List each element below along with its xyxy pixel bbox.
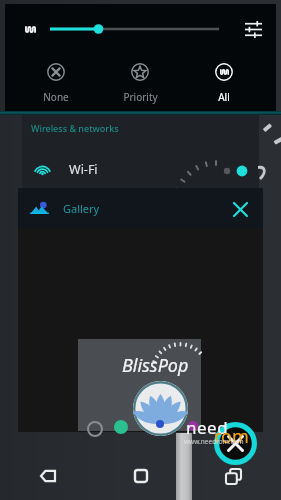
button[interactable]: Recent apps — [188, 452, 278, 500]
button[interactable]: Home — [96, 452, 186, 500]
button[interactable]: None — [20, 58, 92, 111]
button[interactable]: Close — [229, 198, 251, 220]
button[interactable]: Gallery — [18, 188, 263, 228]
button[interactable]: Wi-Fi — [22, 150, 259, 188]
staticText: Wireless & networks — [31, 122, 119, 134]
staticText: None — [43, 90, 69, 104]
button[interactable] — [216, 159, 252, 183]
staticText: www.needrom.com — [184, 437, 244, 446]
staticText: BlissPop — [122, 353, 189, 378]
staticText: All — [218, 90, 230, 104]
staticText: rom — [214, 424, 249, 449]
staticText: Wi-Fi — [69, 161, 98, 178]
button[interactable]: All — [188, 58, 260, 111]
button[interactable]: Sound settings — [241, 17, 265, 41]
staticText: need — [186, 416, 229, 439]
staticText: Gallery — [63, 201, 100, 216]
button[interactable]: Priority — [104, 58, 176, 111]
staticText: Priority — [123, 90, 158, 104]
button[interactable]: Back — [3, 452, 93, 500]
